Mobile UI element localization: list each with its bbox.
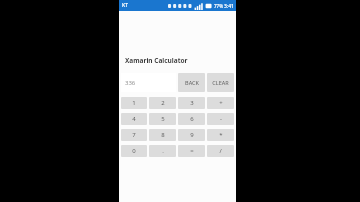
button[interactable]: * xyxy=(207,129,234,141)
staticText: 3 xyxy=(190,99,194,107)
button[interactable]: 1 xyxy=(121,97,147,109)
button[interactable]: = xyxy=(178,145,205,157)
button[interactable]: 4 xyxy=(121,113,147,125)
staticText: 1 xyxy=(132,99,136,107)
button[interactable]: 8 xyxy=(149,129,176,141)
staticText: KT xyxy=(122,2,128,9)
button[interactable]: 7 xyxy=(121,129,147,141)
button[interactable]: 5 xyxy=(149,113,176,125)
button[interactable]: 0 xyxy=(121,145,147,157)
staticText: 6 xyxy=(190,115,194,123)
staticText: 9 xyxy=(190,131,194,139)
button[interactable]: 9 xyxy=(178,129,205,141)
button[interactable]: 6 xyxy=(178,113,205,125)
staticText: BACK xyxy=(185,79,199,86)
staticText: 336 xyxy=(125,79,136,87)
staticText: 8 xyxy=(161,131,165,139)
staticText: 2 xyxy=(161,99,165,107)
button[interactable]: BACK xyxy=(178,73,205,92)
staticText: . xyxy=(162,147,164,155)
staticText: * xyxy=(219,131,223,139)
staticText: CLEAR xyxy=(212,79,229,86)
button[interactable]: / xyxy=(207,145,234,157)
staticText: / xyxy=(219,147,222,155)
staticText: 77% xyxy=(214,3,223,9)
staticText: Xamarin Calculator xyxy=(125,56,188,65)
button[interactable]: 336 xyxy=(121,73,176,92)
button[interactable]: 2 xyxy=(149,97,176,109)
staticText: 4 xyxy=(132,115,136,123)
button[interactable]: 3 xyxy=(178,97,205,109)
staticText: 3:41 xyxy=(224,3,234,10)
staticText: 0 xyxy=(132,147,136,155)
staticText: 7 xyxy=(132,131,136,139)
staticText: + xyxy=(219,99,223,107)
button[interactable]: - xyxy=(207,113,234,125)
staticText: - xyxy=(220,115,222,123)
button[interactable]: CLEAR xyxy=(207,73,234,92)
staticText: 5 xyxy=(161,115,165,123)
button[interactable]: + xyxy=(207,97,234,109)
staticText: = xyxy=(190,147,194,155)
